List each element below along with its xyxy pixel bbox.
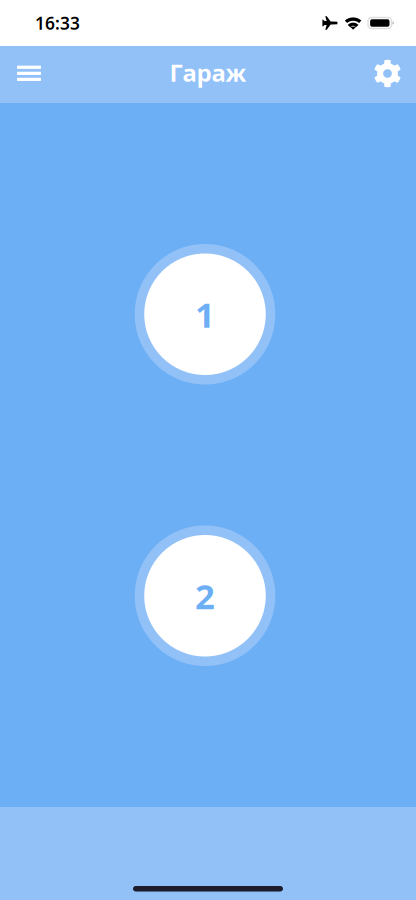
staticText: 16:33 xyxy=(35,11,80,34)
staticText: 2 xyxy=(195,573,215,619)
staticText: Гараж xyxy=(169,57,246,88)
button[interactable]: Settings xyxy=(365,46,410,103)
staticText: 1 xyxy=(195,291,215,337)
button[interactable]: 1 xyxy=(135,244,275,384)
button[interactable]: Menu xyxy=(6,46,51,103)
button[interactable]: 2 xyxy=(135,525,275,666)
